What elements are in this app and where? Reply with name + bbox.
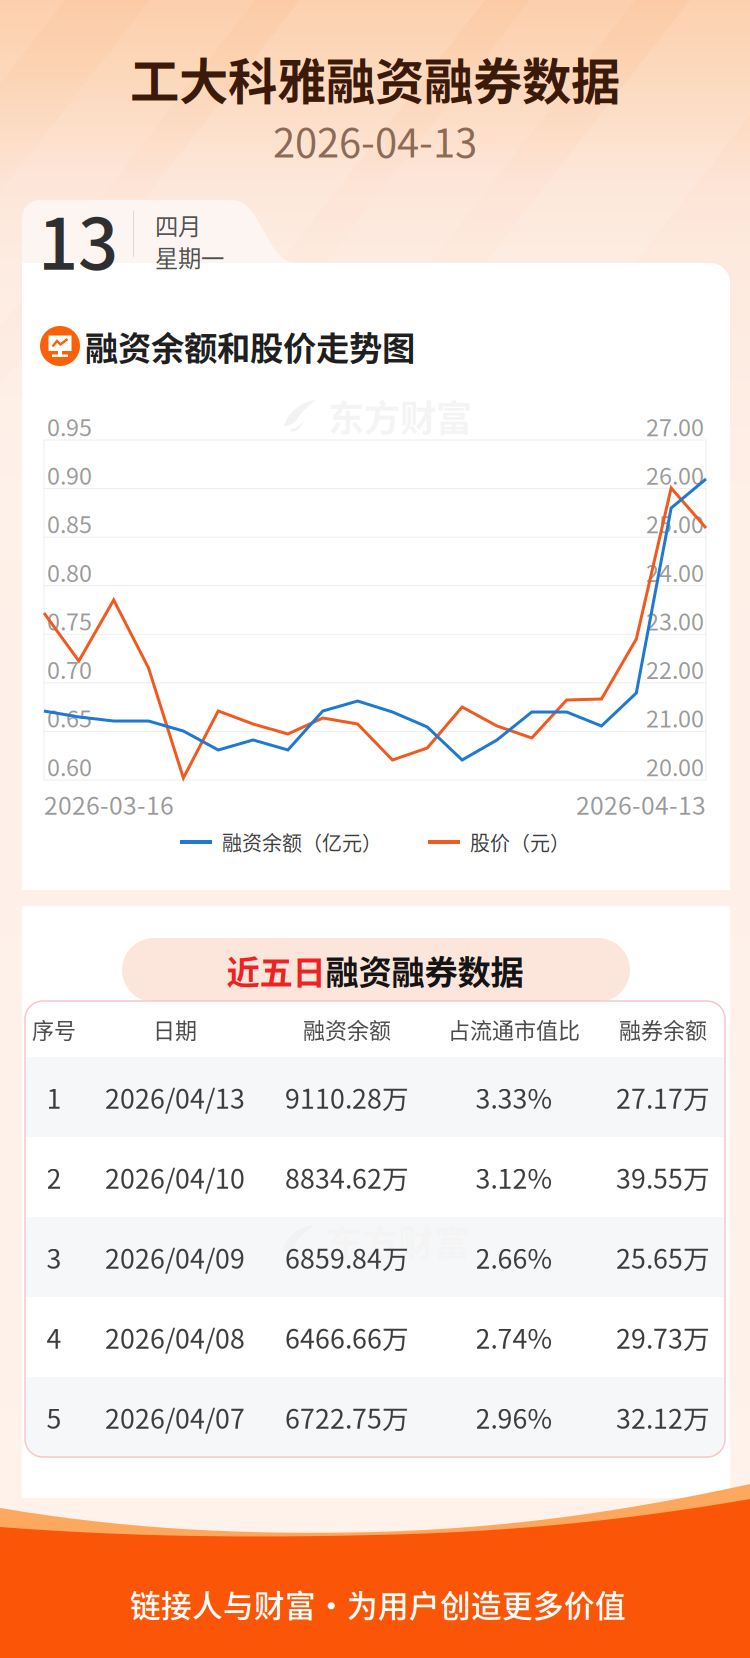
- staticText: 0.95: [47, 409, 92, 443]
- staticText: 23.00: [646, 603, 704, 637]
- staticText: 序号: [32, 1013, 76, 1045]
- staticText: 25.00: [646, 506, 704, 540]
- staticText: 26.00: [646, 458, 704, 491]
- staticText: 13: [38, 188, 118, 290]
- staticText: 东方财富: [328, 390, 472, 442]
- staticText: 2026/04/08: [105, 1318, 245, 1356]
- staticText: 39.55万: [616, 1158, 710, 1196]
- staticText: 星期一: [155, 240, 224, 274]
- staticText: 0.60: [47, 749, 92, 783]
- staticText: 21.00: [646, 700, 704, 734]
- staticText: 2.66%: [475, 1238, 552, 1276]
- staticText: 3.12%: [475, 1158, 552, 1196]
- staticText: 6722.75万: [285, 1398, 409, 1436]
- staticText: 4: [46, 1318, 61, 1356]
- button[interactable]: 3: [25, 1217, 725, 1297]
- staticText: 6466.66万: [285, 1318, 409, 1356]
- staticText: 2.96%: [475, 1398, 552, 1436]
- staticText: 工大科雅融资融券数据: [130, 42, 620, 114]
- staticText: 融资余额和股价走势图: [85, 322, 415, 370]
- button[interactable]: 2: [25, 1137, 725, 1217]
- staticText: 3: [46, 1238, 61, 1276]
- staticText: 2026/04/10: [105, 1158, 245, 1196]
- staticText: 日期: [153, 1013, 197, 1045]
- staticText: 融资融券数据: [325, 946, 523, 994]
- staticText: 22.00: [646, 652, 704, 686]
- staticText: 2026/04/09: [105, 1238, 245, 1276]
- staticText: 8834.62万: [285, 1158, 409, 1196]
- staticText: 32.12万: [616, 1398, 710, 1436]
- staticText: 1: [46, 1078, 61, 1116]
- staticText: 6859.84万: [285, 1238, 409, 1276]
- staticText: 链接人与财富·为用户创造更多价值: [130, 1582, 626, 1626]
- staticText: 融资余额（亿元）: [222, 827, 382, 856]
- staticText: 占流通市值比: [448, 1013, 580, 1045]
- staticText: 2026-04-13: [576, 786, 706, 822]
- staticText: 股价（元）: [470, 827, 570, 856]
- staticText: 27.17万: [616, 1078, 710, 1116]
- staticText: 融资余额: [303, 1013, 391, 1045]
- staticText: 0.90: [47, 458, 92, 491]
- staticText: 0.65: [47, 700, 92, 734]
- button[interactable]: 链接人与财富·为用户创造更多价值: [3, 1582, 750, 1626]
- staticText: 24.00: [646, 555, 704, 589]
- staticText: 融券余额: [619, 1013, 707, 1045]
- staticText: 2: [46, 1158, 61, 1196]
- staticText: 2026-03-16: [44, 786, 174, 822]
- staticText: 2026-04-13: [273, 111, 477, 169]
- staticText: 0.85: [47, 506, 92, 540]
- button[interactable]: 5: [25, 1377, 725, 1457]
- staticText: 0.80: [47, 555, 92, 589]
- staticText: 2.74%: [475, 1318, 552, 1356]
- staticText: 2026/04/07: [105, 1398, 245, 1436]
- staticText: 20.00: [646, 749, 704, 783]
- staticText: 5: [46, 1398, 61, 1436]
- staticText: 29.73万: [616, 1318, 710, 1356]
- staticText: 近五日: [226, 946, 325, 994]
- staticText: 东方财富: [326, 1215, 470, 1267]
- staticText: 0.75: [47, 603, 92, 637]
- button[interactable]: 1: [25, 1057, 725, 1137]
- staticText: 四月: [155, 208, 201, 242]
- staticText: 27.00: [646, 409, 704, 443]
- staticText: 9110.28万: [285, 1078, 409, 1116]
- staticText: 0.70: [47, 652, 92, 686]
- button[interactable]: 4: [25, 1297, 725, 1377]
- staticText: 2026/04/13: [105, 1078, 245, 1116]
- staticText: 25.65万: [616, 1238, 710, 1276]
- staticText: 3.33%: [475, 1078, 552, 1116]
